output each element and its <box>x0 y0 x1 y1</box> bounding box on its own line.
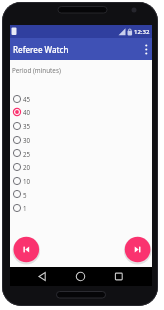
staticText: 40 <box>23 108 31 116</box>
staticText: 45 <box>23 95 31 103</box>
staticText: Period (minutes) <box>12 66 61 75</box>
staticText: 5 <box>23 191 27 199</box>
staticText: 30 <box>23 136 31 144</box>
staticText: 20 <box>23 163 31 171</box>
staticText: 35 <box>23 122 31 130</box>
staticText: 10 <box>23 177 31 185</box>
staticText: 1 <box>23 204 27 212</box>
staticText: Referee Watch <box>13 44 69 55</box>
staticText: 25 <box>23 150 31 158</box>
staticText: 12:32 <box>134 28 150 36</box>
